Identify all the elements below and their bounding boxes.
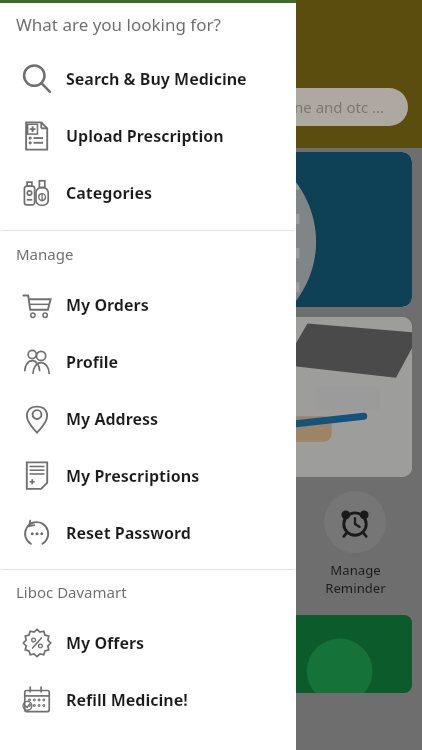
button[interactable]: My Prescriptions	[0, 447, 296, 504]
staticText: Profile	[66, 351, 119, 373]
button[interactable]: Refill Medicine!	[0, 671, 296, 728]
button[interactable]: Upload Prescription	[0, 107, 296, 164]
staticText: Manage	[16, 244, 74, 264]
button[interactable]: My Offers	[0, 614, 296, 671]
button[interactable]: Categories	[0, 164, 296, 221]
staticText: Manage Reminder	[325, 561, 386, 597]
staticText: Reset Password	[66, 522, 191, 544]
button[interactable]: Reset Password	[0, 504, 296, 561]
staticText: Upload Prescription	[66, 125, 224, 147]
staticText: My Orders	[66, 294, 149, 316]
staticText: My Address	[66, 408, 159, 430]
staticText: Order on Whatsapp	[24, 644, 165, 664]
staticText: Categories	[66, 182, 152, 204]
button[interactable]: Search medicine and otc ...	[180, 88, 408, 126]
button[interactable]: Search & Buy Medicine	[0, 50, 296, 107]
staticText: What are you looking for?	[16, 13, 221, 36]
staticText: My Offers	[66, 632, 145, 654]
button[interactable]	[10, 152, 412, 307]
staticText: My Prescriptions	[66, 465, 200, 487]
button[interactable]: Manage Reminder	[300, 491, 410, 597]
staticText: Liboc Davamart	[16, 582, 127, 602]
staticText: Search medicine and otc ...	[196, 97, 385, 117]
staticText: Search & Buy Medicine	[66, 68, 247, 90]
button[interactable]: My Orders	[0, 276, 296, 333]
button[interactable]: Profile	[0, 333, 296, 390]
button[interactable]	[10, 317, 412, 477]
button[interactable]: My Address	[0, 390, 296, 447]
button[interactable]: Order on Whatsapp	[10, 615, 412, 693]
staticText: Refill Medicine!	[66, 689, 188, 711]
